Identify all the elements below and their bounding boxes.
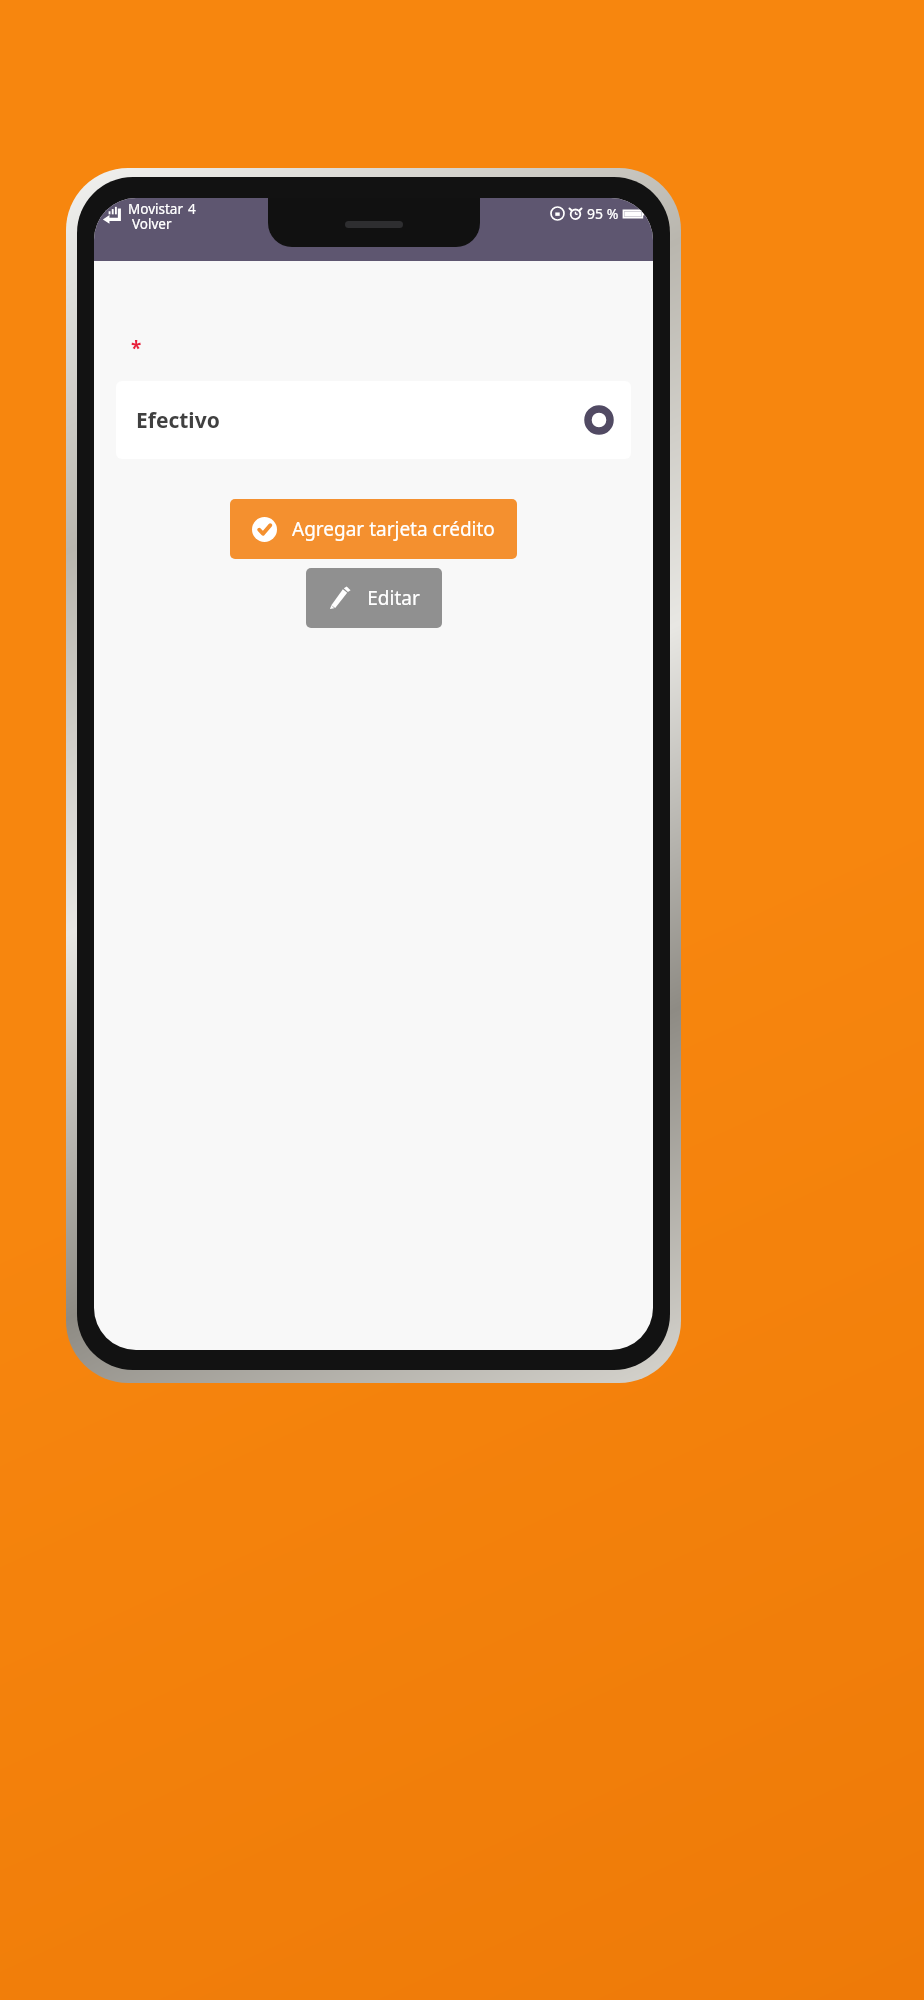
staticText: Movistar [128,200,183,218]
staticText: Agregar tarjeta crédito [292,516,495,542]
staticText: 4 [188,200,196,218]
button[interactable]: Efectivo [116,381,631,459]
button[interactable]: Editar [306,568,442,628]
other: Seleccionado [587,408,611,432]
staticText: 95 % [587,204,619,223]
button[interactable]: Volver [100,200,198,236]
staticText: Editar [367,585,420,611]
button[interactable]: Agregar tarjeta crédito [230,499,517,559]
other: Volver [102,204,124,226]
staticText: Efectivo [136,406,220,435]
staticText: * [131,335,142,361]
staticText: Volver [132,215,172,233]
